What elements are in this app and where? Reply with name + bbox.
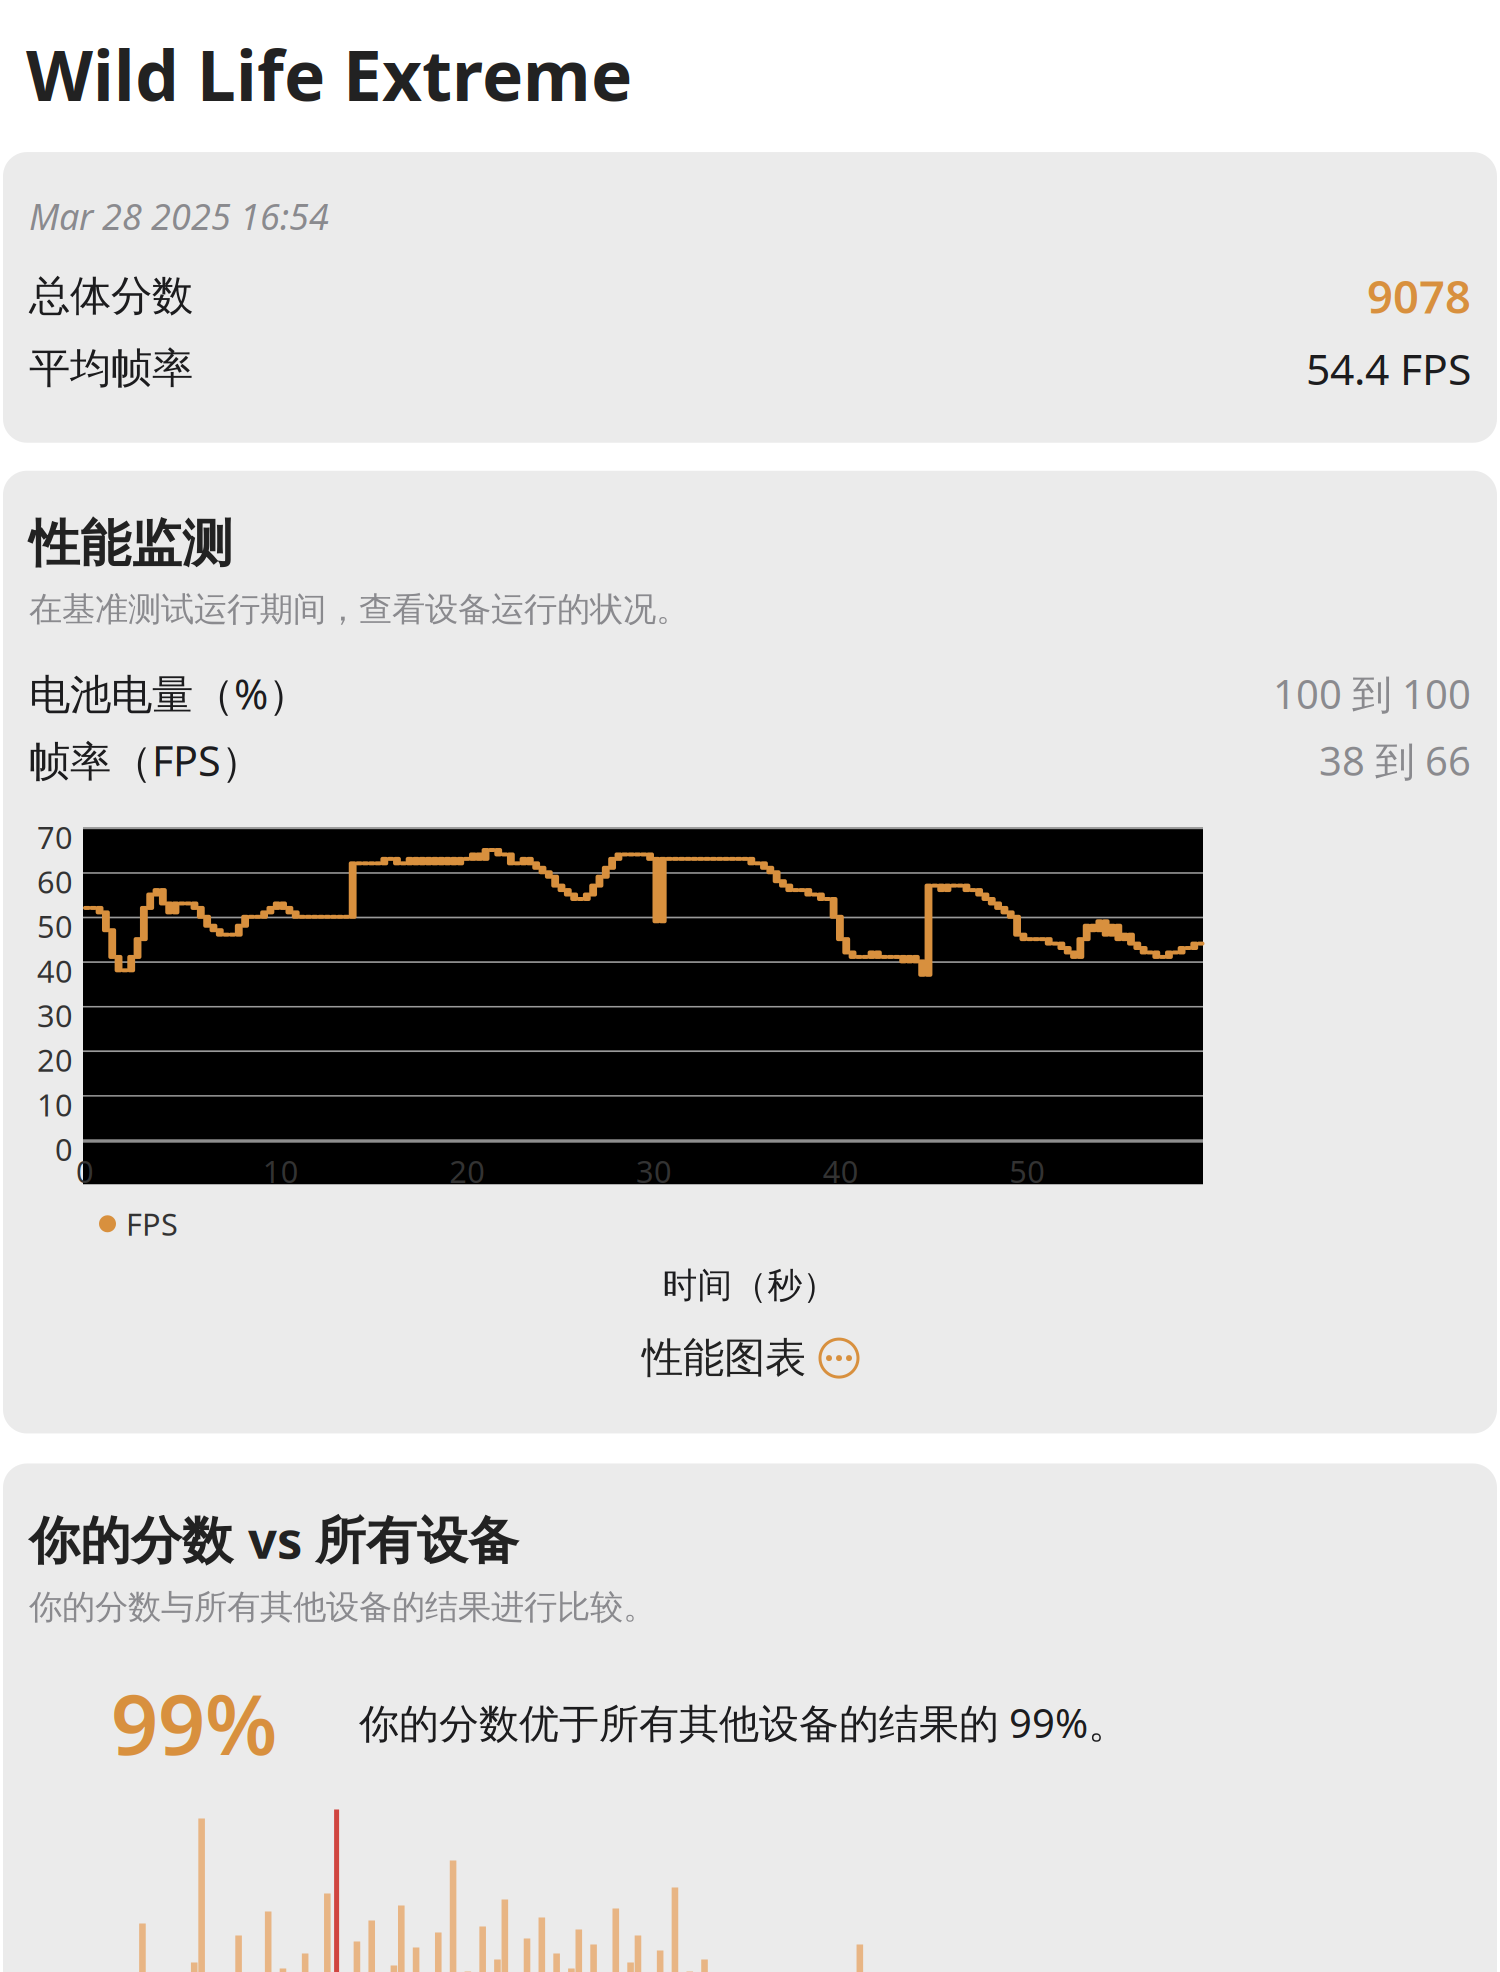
staticText: 30: [37, 995, 73, 1036]
button[interactable]: 性能图表: [632, 1327, 868, 1389]
staticText: 帧率（FPS）: [29, 733, 262, 788]
staticText: 性能图表: [642, 1333, 806, 1383]
staticText: 70: [37, 817, 73, 857]
staticText: 在基准测试运行期间，查看设备运行的状况。: [29, 589, 689, 630]
staticText: 0: [55, 1129, 73, 1169]
staticText: 60: [37, 861, 73, 902]
staticText: 30: [636, 1151, 672, 1191]
staticText: 38 到 66: [1319, 734, 1471, 787]
staticText: 性能监测: [29, 513, 233, 575]
staticText: 9078: [1367, 266, 1471, 326]
staticText: 你的分数与所有其他设备的结果进行比较。: [29, 1587, 656, 1628]
staticText: 时间（秒）: [662, 1264, 837, 1307]
staticText: 你的分数优于所有其他设备的结果的 99%。: [359, 1696, 1128, 1749]
staticText: 平均帧率: [29, 343, 193, 394]
staticText: 54.4 FPS: [1306, 340, 1471, 397]
staticText: 10: [263, 1151, 299, 1191]
staticText: 40: [37, 950, 73, 991]
staticText: 100 到 100: [1273, 667, 1471, 720]
staticText: Wild Life Extreme: [26, 28, 632, 120]
staticText: 总体分数: [29, 271, 193, 321]
staticText: 10: [37, 1084, 73, 1125]
staticText: 20: [37, 1039, 73, 1080]
staticText: 20: [449, 1151, 485, 1191]
staticText: 电池电量（%）: [29, 666, 309, 721]
staticText: Mar 28 2025 16:54: [29, 192, 329, 240]
staticText: 99%: [111, 1668, 277, 1777]
staticText: FPS: [126, 1203, 178, 1244]
staticText: 0: [76, 1151, 94, 1191]
staticText: 50: [37, 906, 73, 946]
staticText: 你的分数 vs 所有设备: [29, 1505, 519, 1573]
staticText: 50: [1009, 1151, 1045, 1191]
staticText: 40: [823, 1151, 859, 1191]
